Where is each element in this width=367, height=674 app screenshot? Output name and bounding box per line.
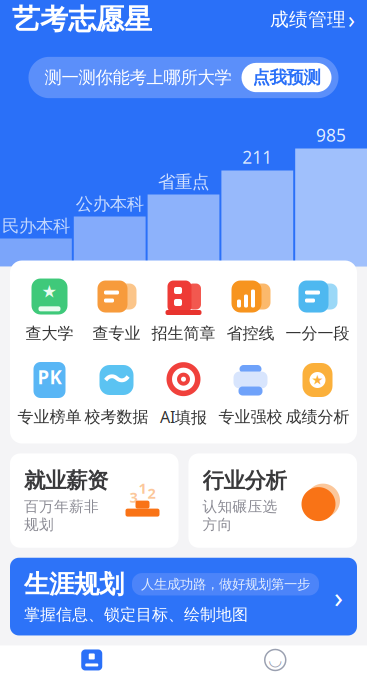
button[interactable]: 招生简章 bbox=[150, 274, 217, 345]
staticText: ◡ bbox=[268, 651, 282, 669]
button[interactable]: ◡ bbox=[183, 645, 367, 674]
staticText: 民办本科 bbox=[2, 215, 70, 236]
button[interactable]: 成绩管理 bbox=[270, 0, 355, 39]
staticText: 成绩管理 bbox=[270, 8, 346, 31]
staticText: › bbox=[334, 577, 343, 616]
staticText: 省控线 bbox=[226, 323, 274, 343]
staticText: 985 bbox=[316, 123, 346, 146]
staticText: AI填报 bbox=[160, 406, 207, 427]
staticText: 2 bbox=[147, 483, 155, 503]
staticText: 211 bbox=[242, 145, 272, 168]
staticText: 就业薪资 bbox=[24, 467, 108, 494]
staticText: 生涯规划 bbox=[24, 569, 124, 600]
staticText: 3 bbox=[129, 487, 137, 507]
staticText: 招生简章 bbox=[151, 323, 215, 343]
button[interactable]: AI填报 bbox=[150, 357, 217, 429]
staticText: ★ bbox=[311, 372, 323, 387]
staticText: 掌握信息、锁定目标、绘制地图 bbox=[24, 605, 248, 624]
staticText: 查大学 bbox=[25, 323, 73, 343]
button[interactable]: 省控线 bbox=[217, 274, 284, 345]
staticText: 专业强校 bbox=[218, 407, 282, 427]
button[interactable]: 查专业 bbox=[83, 274, 150, 345]
button[interactable]: 〜 bbox=[83, 358, 150, 429]
button[interactable]: 一分一段 bbox=[284, 274, 351, 345]
staticText: 专业榜单 bbox=[17, 407, 81, 427]
button[interactable]: 就业薪资 bbox=[10, 453, 178, 548]
staticText: 〜 bbox=[103, 364, 130, 396]
staticText: › bbox=[348, 4, 355, 35]
button[interactable]: 生涯规划 bbox=[10, 558, 357, 635]
staticText: 查专业 bbox=[92, 323, 140, 343]
staticText: 成绩分析 bbox=[285, 407, 349, 427]
staticText: ★ bbox=[41, 282, 57, 301]
staticText: 公办本科 bbox=[76, 193, 144, 214]
button[interactable]: 行业分析 bbox=[188, 453, 357, 548]
staticText: 艺考志愿星 bbox=[12, 2, 152, 37]
button[interactable]: ★ bbox=[16, 274, 83, 345]
staticText: PK bbox=[37, 365, 61, 389]
button[interactable]: 首页 bbox=[0, 645, 183, 674]
staticText: 百万年薪非规划 bbox=[24, 498, 99, 534]
staticText: 人生成功路，做好规划第一步 bbox=[141, 576, 310, 592]
staticText: 校考数据 bbox=[84, 407, 148, 427]
staticText: 点我预测 bbox=[252, 67, 320, 88]
button[interactable]: PK bbox=[16, 358, 83, 429]
staticText: 认知碾压选方向 bbox=[202, 498, 277, 534]
button[interactable]: ★ bbox=[284, 358, 351, 429]
staticText: 行业分析 bbox=[202, 467, 286, 494]
button[interactable]: 专业强校 bbox=[217, 358, 284, 429]
staticText: 测一测你能考上哪所大学 bbox=[44, 67, 231, 88]
button[interactable]: 测一测你能考上哪所大学 bbox=[28, 57, 338, 98]
staticText: 一分一段 bbox=[285, 323, 349, 343]
staticText: 1 bbox=[138, 478, 146, 498]
staticText: 省重点 bbox=[158, 171, 209, 192]
